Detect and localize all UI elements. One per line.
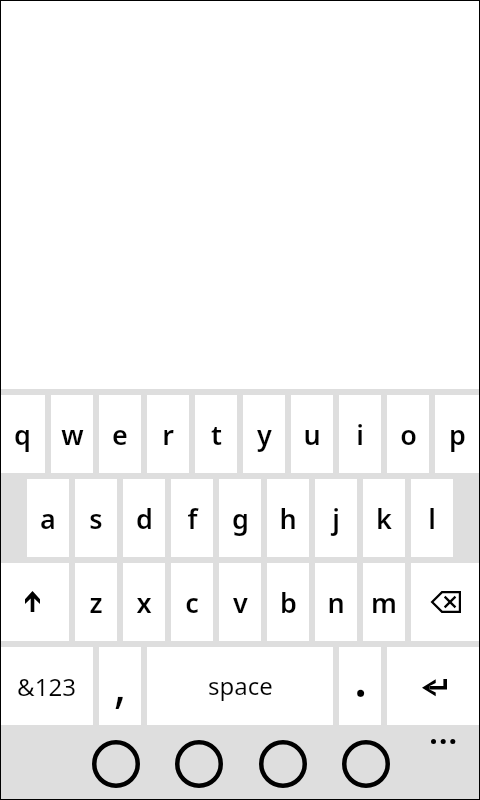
button[interactable]: k — [363, 479, 405, 557]
button[interactable]: Backspace — [411, 563, 480, 641]
staticText: e — [112, 416, 128, 453]
staticText: y — [257, 416, 272, 453]
staticText: g — [232, 500, 249, 537]
button[interactable]: t — [195, 395, 237, 473]
button[interactable]: o — [387, 395, 429, 473]
staticText: o — [400, 416, 417, 453]
button[interactable]: v — [219, 563, 261, 641]
staticText: a — [40, 500, 56, 537]
button[interactable]: b — [267, 563, 309, 641]
staticText: m — [371, 584, 397, 621]
button[interactable]: d — [123, 479, 165, 557]
staticText: t — [211, 416, 222, 453]
staticText: k — [376, 500, 392, 537]
staticText: space — [208, 669, 273, 702]
button[interactable]: e — [99, 395, 141, 473]
staticText: x — [136, 584, 152, 621]
button[interactable]: space — [147, 647, 333, 725]
staticText: l — [428, 500, 436, 537]
button[interactable]: l — [411, 479, 453, 557]
staticText: r — [162, 416, 174, 453]
staticText: v — [233, 584, 248, 621]
staticText: h — [279, 500, 297, 537]
button[interactable]: Shift — [0, 563, 69, 641]
staticText: s — [89, 500, 103, 537]
button[interactable]: r — [147, 395, 189, 473]
button[interactable]: h — [267, 479, 309, 557]
button[interactable]: m — [363, 563, 405, 641]
staticText: d — [136, 500, 153, 537]
button[interactable]: n — [315, 563, 357, 641]
button[interactable]: u — [291, 395, 333, 473]
staticText: &123 — [17, 670, 76, 703]
button[interactable]: &123 — [0, 647, 93, 725]
button[interactable]: c — [171, 563, 213, 641]
button[interactable]: Back — [90, 738, 142, 790]
button[interactable]: Recents — [257, 738, 309, 790]
button[interactable]: Enter — [387, 647, 480, 725]
button[interactable]: Search — [340, 738, 392, 790]
staticText: p — [449, 416, 466, 453]
button[interactable]: i — [339, 395, 381, 473]
button[interactable]: More options — [425, 729, 461, 754]
button[interactable]: j — [315, 479, 357, 557]
button[interactable]: a — [27, 479, 69, 557]
button[interactable]: w — [51, 395, 93, 473]
button[interactable]: , — [99, 647, 141, 725]
button[interactable]: s — [75, 479, 117, 557]
staticText: q — [14, 416, 31, 453]
button[interactable]: . — [339, 647, 381, 725]
staticText: , — [113, 651, 127, 718]
staticText: b — [280, 584, 297, 621]
button[interactable]: g — [219, 479, 261, 557]
button[interactable]: f — [171, 479, 213, 557]
staticText: . — [354, 648, 367, 711]
staticText: w — [61, 416, 84, 453]
button[interactable]: z — [75, 563, 117, 641]
button[interactable]: x — [123, 563, 165, 641]
button[interactable]: Home — [173, 738, 225, 790]
staticText: n — [327, 584, 345, 621]
staticText: u — [303, 416, 321, 453]
button[interactable]: p — [435, 395, 480, 473]
staticText: z — [89, 584, 103, 621]
staticText: f — [187, 500, 198, 537]
button[interactable]: q — [0, 395, 45, 473]
staticText: i — [356, 416, 364, 453]
staticText: c — [185, 584, 199, 621]
staticText: j — [332, 500, 340, 537]
button[interactable]: y — [243, 395, 285, 473]
